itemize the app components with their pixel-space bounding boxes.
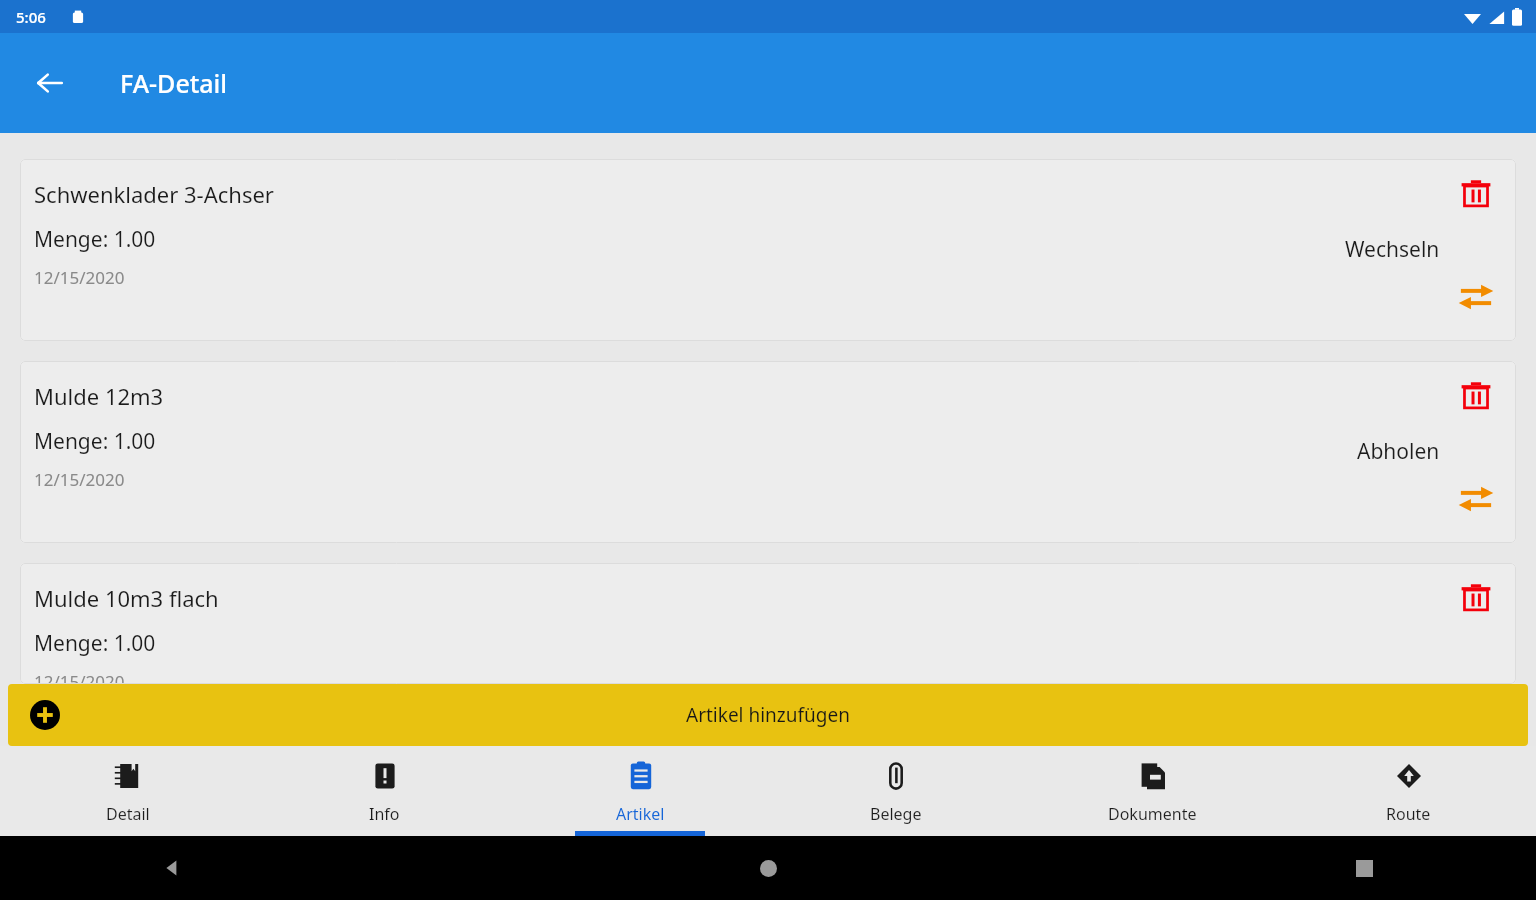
staticText: Belege [870,803,922,825]
button[interactable]: Dokumente [1024,746,1280,836]
staticText: FA-Detail [120,66,228,100]
staticText: Detail [106,803,150,825]
button[interactable]: Info [256,746,512,836]
button[interactable]: Back [26,59,74,107]
staticText: 12/15/2020 [34,468,125,491]
staticText: Dokumente [1108,803,1197,825]
button[interactable]: Recent apps [1342,846,1386,890]
staticText: Artikel [616,803,665,825]
button[interactable]: Route [1280,746,1536,836]
button[interactable]: Artikel hinzufügen [8,684,1528,746]
staticText: Abholen [1357,437,1440,466]
staticText: Menge: 1.00 [34,427,156,456]
button[interactable]: Abholen [1454,477,1498,521]
staticText: Menge: 1.00 [34,629,156,658]
button[interactable]: Wechseln [1454,275,1498,319]
staticText: Menge: 1.00 [34,225,156,254]
button[interactable]: Mulde 10m3 flach [20,563,1516,684]
button[interactable]: Delete [1454,375,1498,419]
staticText: Wechseln [1345,235,1440,264]
staticText: Artikel hinzufügen [686,702,850,728]
button[interactable]: Home [746,846,790,890]
button[interactable]: Belege [768,746,1024,836]
staticText: Route [1386,803,1431,825]
button[interactable]: Mulde 12m3 [20,361,1516,543]
staticText: 12/15/2020 [34,266,125,289]
staticText: Mulde 10m3 flach [34,583,219,613]
staticText: Schwenklader 3-Achser [34,179,274,209]
button[interactable]: Schwenklader 3-Achser [20,159,1516,341]
button[interactable]: Back [150,846,194,890]
button[interactable]: Artikel [512,746,768,836]
button[interactable]: Delete [1454,577,1498,621]
button[interactable]: Detail [0,746,256,836]
staticText: 5:06 [16,7,46,27]
staticText: Info [369,803,400,825]
button[interactable]: Delete [1454,173,1498,217]
staticText: Mulde 12m3 [34,381,164,411]
staticText: 12/15/2020 [34,670,125,684]
